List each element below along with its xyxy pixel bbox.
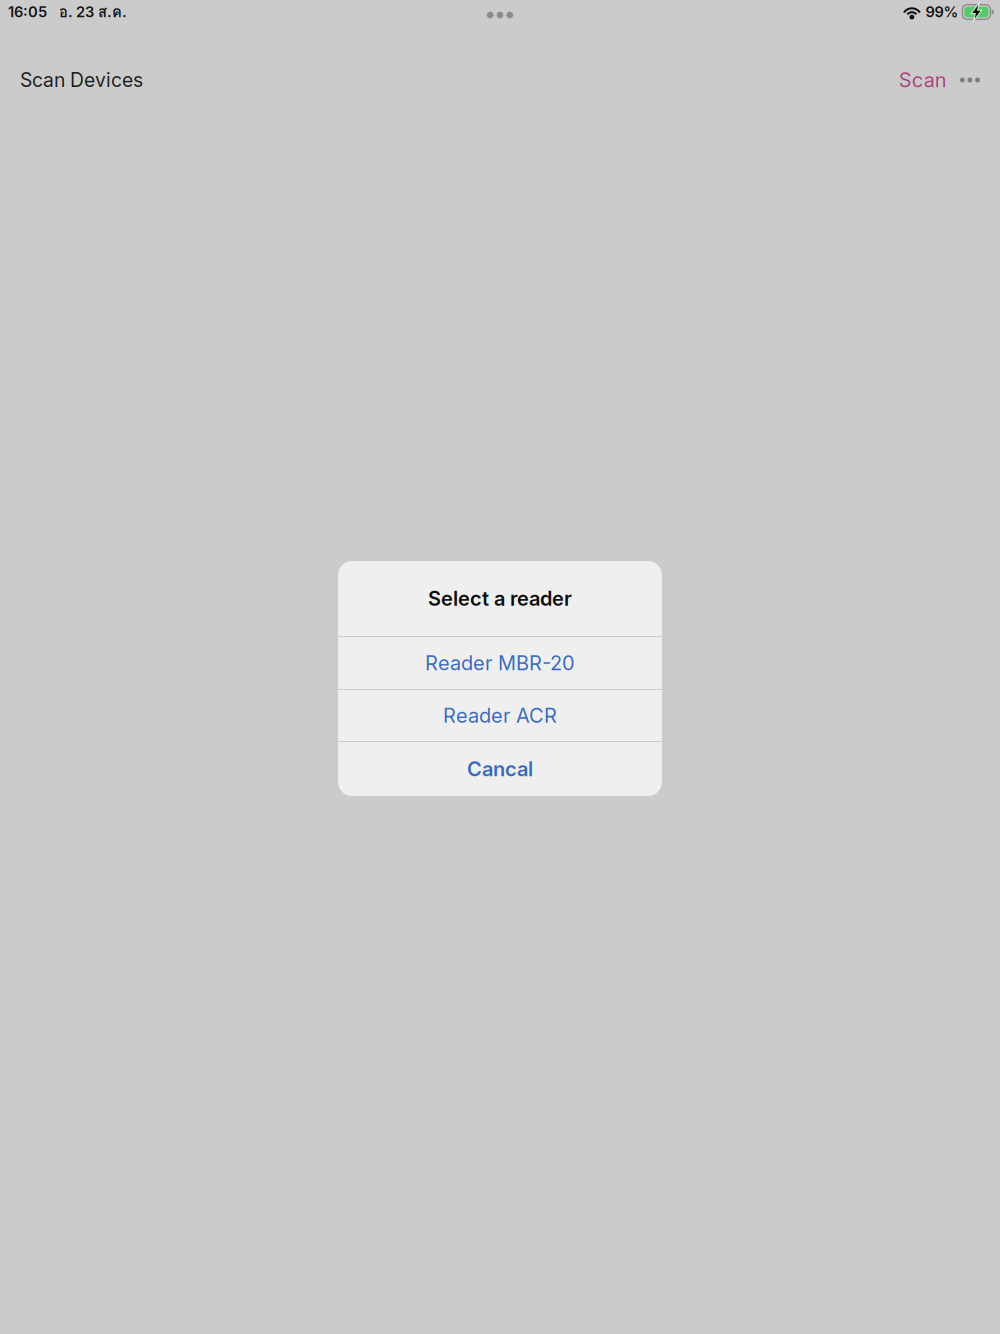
staticText: 16:05	[8, 3, 47, 21]
button[interactable]: More options	[947, 65, 989, 94]
staticText: อ. 23 ส.ค.	[59, 0, 127, 24]
staticText: Reader MBR-20	[425, 651, 575, 675]
staticText: Scan	[899, 68, 947, 92]
button[interactable]: Scan	[899, 59, 947, 101]
staticText: Cancal	[467, 757, 533, 781]
button[interactable]: Reader ACR	[338, 690, 662, 741]
staticText: Scan Devices	[20, 68, 143, 92]
staticText: Select a reader	[428, 586, 572, 611]
button[interactable]: Cancal	[338, 742, 662, 796]
staticText: Reader ACR	[443, 703, 557, 728]
button[interactable]: Reader MBR-20	[338, 637, 662, 689]
staticText: 99%	[925, 3, 958, 21]
